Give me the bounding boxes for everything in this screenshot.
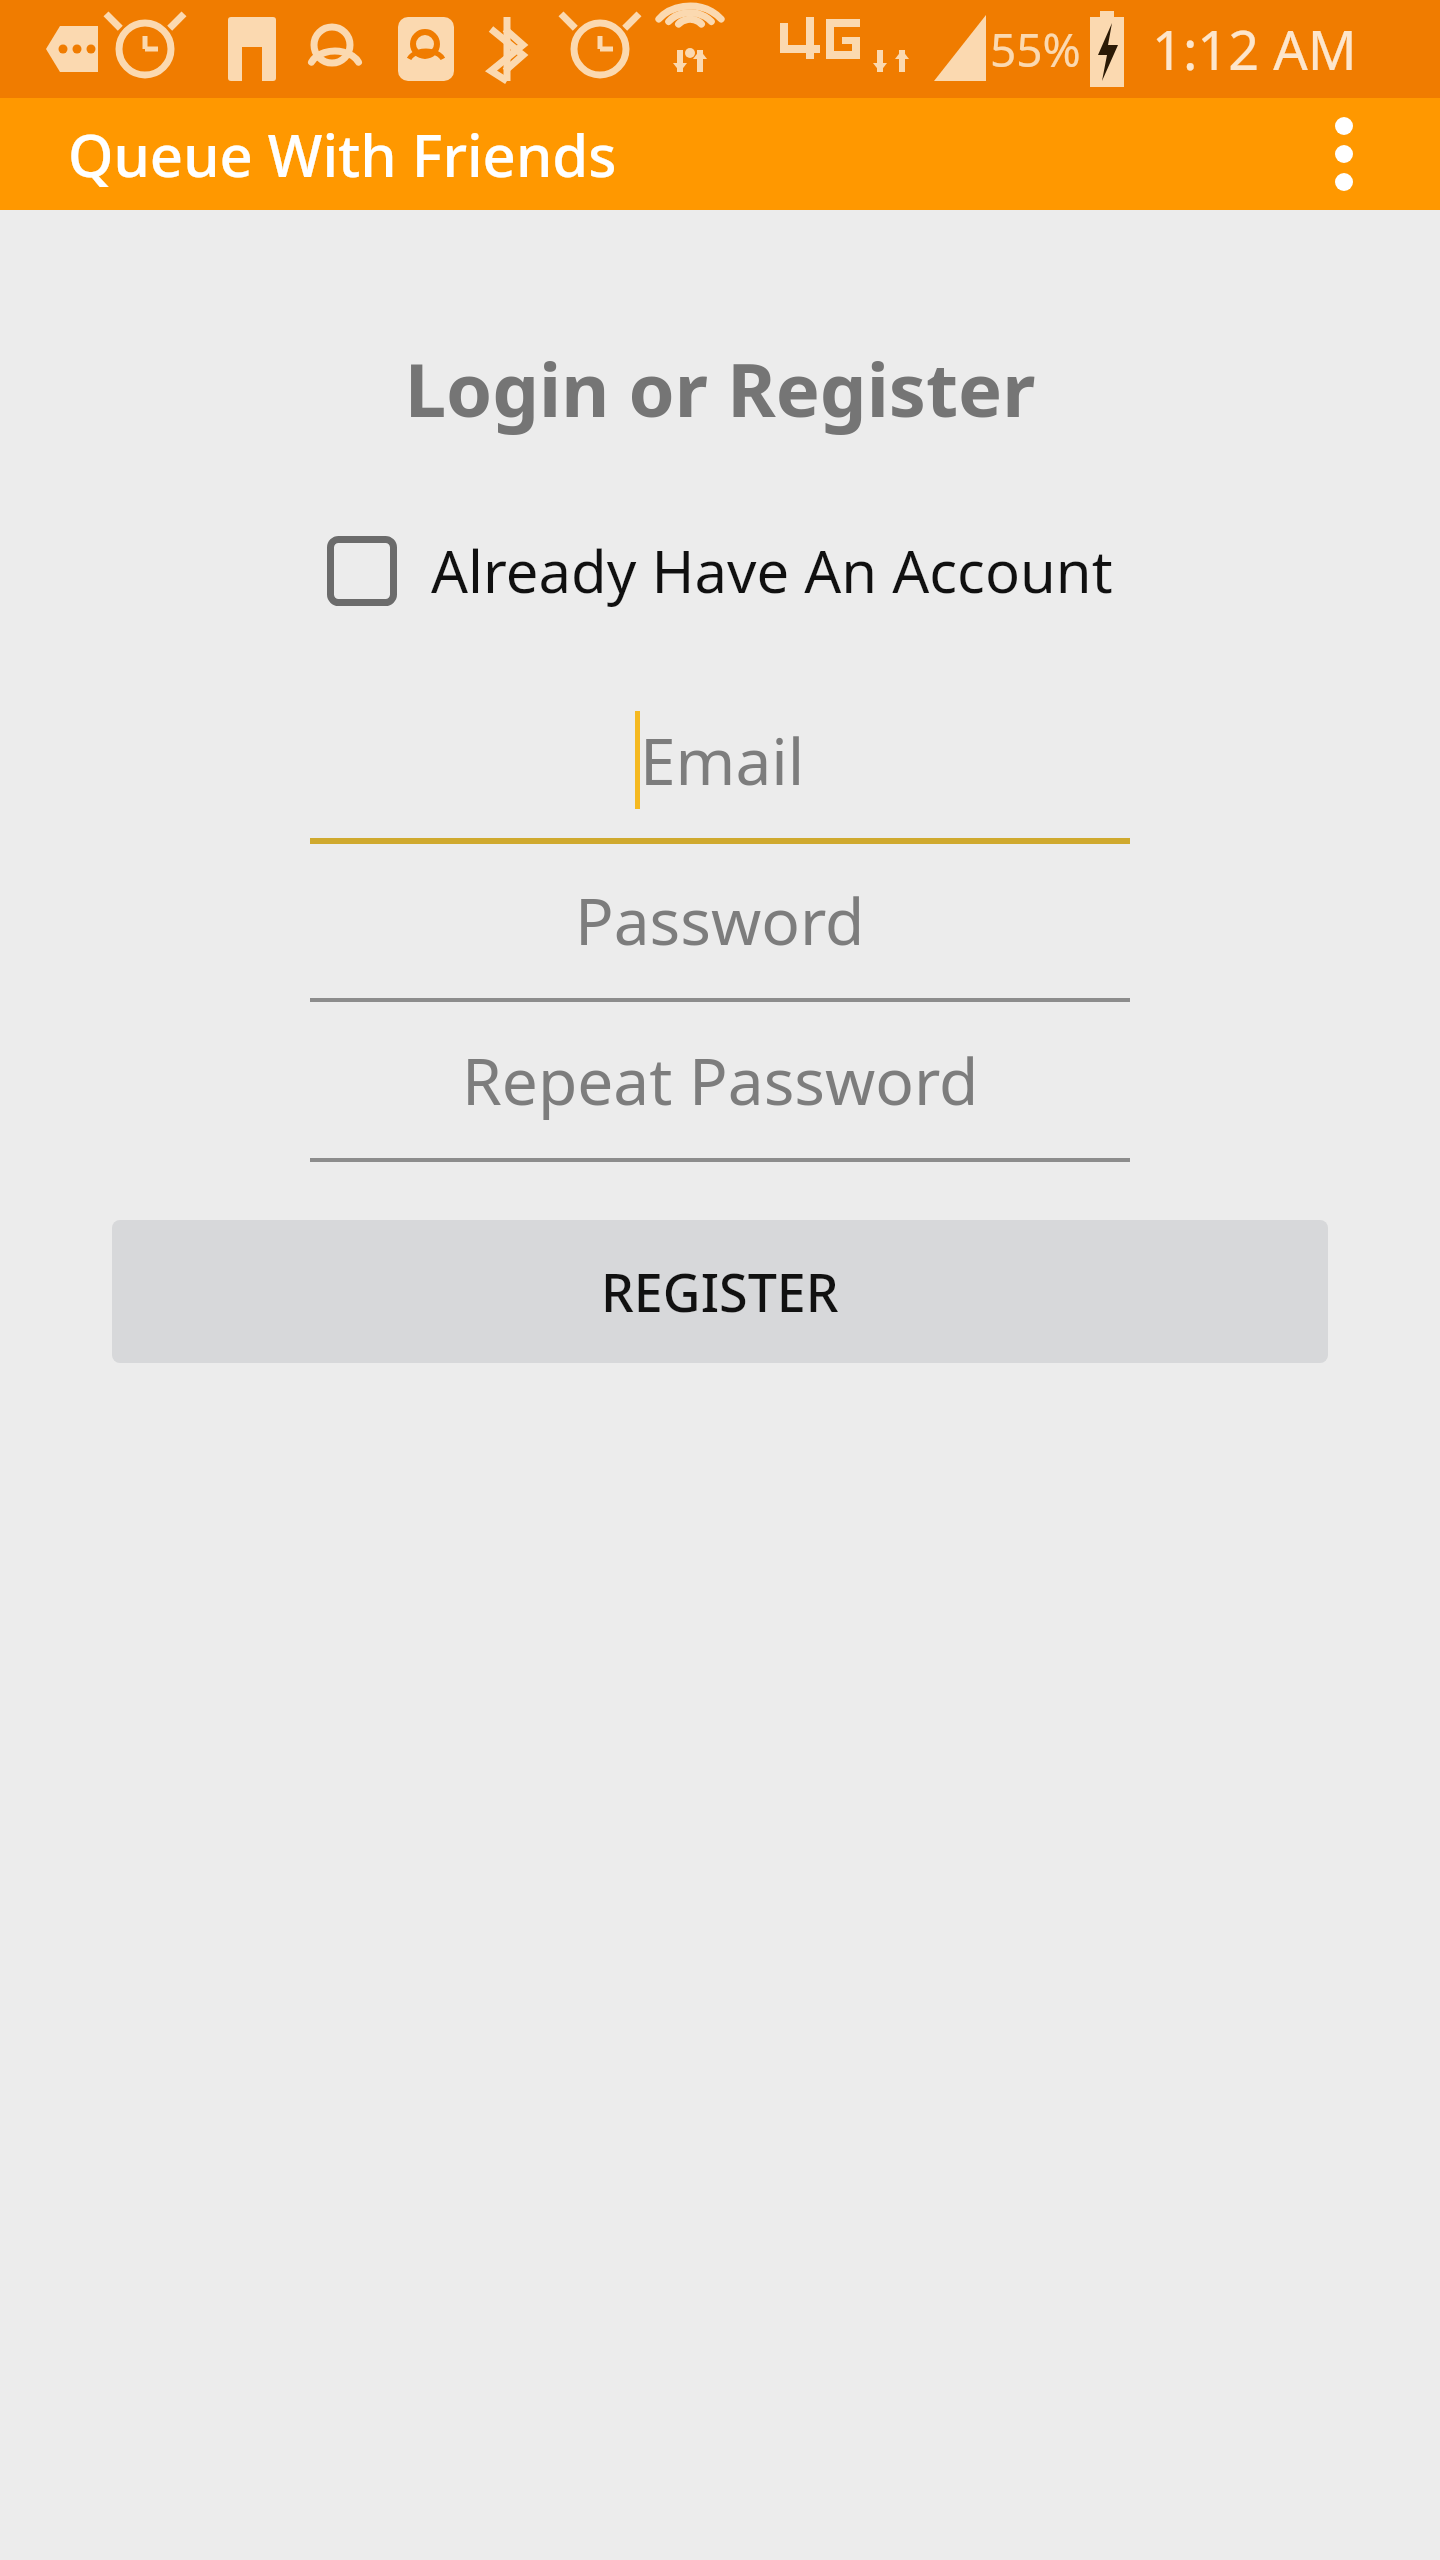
staticText: Password (575, 877, 865, 964)
staticText: Email (640, 717, 805, 804)
button[interactable]: Repeat Password (310, 1010, 1130, 1170)
button[interactable]: Password (310, 850, 1130, 1010)
button[interactable]: More options (1296, 106, 1392, 202)
staticText: Queue With Friends (68, 115, 617, 194)
staticText: Repeat Password (462, 1037, 979, 1124)
button[interactable]: REGISTER (112, 1220, 1328, 1363)
staticText: Already Have An Account (431, 531, 1113, 610)
staticText: REGISTER (601, 1256, 839, 1327)
staticText: 1:12 AM (1152, 12, 1357, 86)
button[interactable]: Already Have An Account (321, 525, 1119, 616)
staticText: Login or Register (0, 338, 1440, 439)
staticText: 55% (990, 18, 1081, 81)
button[interactable]: Email (310, 690, 1130, 850)
